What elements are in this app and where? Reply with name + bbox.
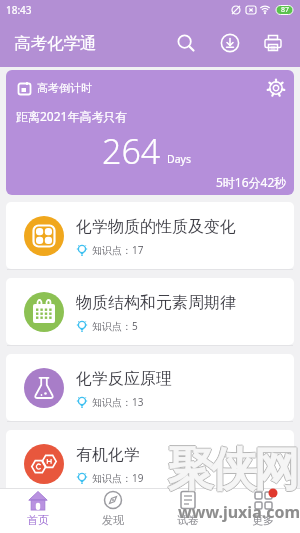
staticText: 87 — [281, 5, 290, 15]
staticText: 知识点：13 — [92, 395, 144, 409]
button[interactable]: 发现 — [75, 489, 150, 533]
staticText: 知识点：5 — [92, 319, 138, 333]
staticText: 高考化学通 — [14, 33, 97, 54]
button[interactable] — [164, 19, 208, 67]
staticText: 知识点：19 — [92, 471, 144, 485]
staticText: 18:43 — [6, 3, 32, 17]
staticText: 距离2021年高考只有 — [16, 108, 128, 124]
staticText: 更多 — [252, 513, 274, 527]
button[interactable]: 首页 — [0, 489, 75, 533]
staticText: 高考倒计时 — [37, 81, 92, 95]
staticText: 化学反应原理 — [76, 369, 172, 389]
staticText: 264 — [102, 128, 161, 174]
staticText: 聚侠网 — [170, 441, 299, 499]
button[interactable] — [252, 19, 294, 67]
staticText: www.juxia.com — [178, 501, 300, 523]
staticText: 知识点：17 — [92, 243, 144, 257]
staticText: 聚侠网 — [169, 441, 298, 499]
staticText: 聚侠网 — [168, 441, 297, 499]
staticText: Days — [167, 152, 191, 166]
staticText: 发现 — [102, 513, 124, 527]
button[interactable] — [208, 19, 252, 67]
staticText: 聚侠网 — [169, 440, 298, 498]
staticText: 聚侠网 — [169, 442, 298, 500]
button[interactable]: 物质结构和元素周期律 — [6, 278, 294, 345]
staticText: 物质结构和元素周期律 — [76, 293, 236, 313]
staticText: 5时16分42秒 — [216, 174, 287, 190]
staticText: 化学物质的性质及变化 — [76, 217, 236, 237]
button[interactable] — [262, 74, 290, 102]
button[interactable]: 化学反应原理 — [6, 354, 294, 421]
button[interactable]: 有机化学 — [6, 430, 294, 497]
button[interactable]: 高考倒计时 — [6, 70, 294, 195]
button[interactable]: 更多 — [225, 489, 300, 533]
button[interactable]: 化学物质的性质及变化 — [6, 202, 294, 269]
staticText: 有机化学 — [76, 445, 140, 465]
staticText: 试卷 — [177, 513, 199, 527]
button[interactable]: 试卷 — [150, 489, 225, 533]
staticText: 首页 — [27, 513, 49, 527]
